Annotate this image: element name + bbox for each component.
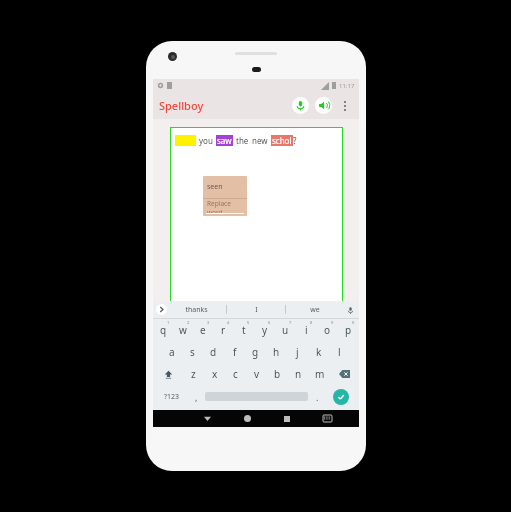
button[interactable]: 2 — [173, 319, 193, 341]
button[interactable]: 6 — [254, 319, 275, 341]
staticText: you — [199, 135, 213, 146]
staticText: u — [282, 323, 289, 337]
staticText: 6 — [268, 320, 271, 325]
button[interactable]: 0 — [338, 319, 359, 341]
staticText: a — [169, 345, 175, 359]
staticText: 7 — [289, 320, 292, 325]
staticText: y — [262, 323, 268, 337]
staticText: g — [252, 345, 259, 359]
button[interactable]: I — [227, 301, 285, 318]
button[interactable]: we — [286, 301, 344, 318]
button[interactable]: k — [308, 341, 329, 363]
button[interactable]: 1 — [153, 319, 173, 341]
button[interactable]: Switch keyboard — [307, 410, 347, 427]
button[interactable]: 9 — [317, 319, 338, 341]
staticText: s — [190, 345, 195, 359]
staticText: Spellboy — [159, 98, 204, 113]
button[interactable]: 4 — [213, 319, 233, 341]
button[interactable]: ?123 — [156, 385, 187, 408]
staticText: the — [236, 135, 249, 146]
staticText: , — [195, 391, 198, 403]
staticText: l — [338, 345, 341, 359]
staticText: n — [295, 367, 302, 381]
staticText: seen — [207, 182, 223, 192]
staticText: w — [179, 323, 187, 337]
staticText: c — [233, 367, 238, 381]
button[interactable]: 5 — [233, 319, 254, 341]
button[interactable]: 3 — [193, 319, 213, 341]
staticText: 4 — [227, 320, 230, 325]
staticText: j — [296, 345, 299, 359]
staticText: p — [345, 323, 352, 337]
staticText: x — [212, 367, 218, 381]
staticText: 9 — [331, 320, 334, 325]
button[interactable]: thanks — [167, 301, 226, 318]
button[interactable]: . — [308, 385, 326, 408]
button[interactable]: More suggestions — [156, 304, 167, 315]
button[interactable]: s — [182, 341, 203, 363]
staticText: o — [324, 323, 331, 337]
button[interactable]: n — [288, 363, 309, 385]
button[interactable]: seen — [203, 176, 247, 216]
button[interactable]: h — [266, 341, 287, 363]
staticText: f — [233, 345, 237, 359]
button[interactable]: Microphone — [292, 97, 309, 114]
staticText: new — [252, 135, 268, 146]
button[interactable]: d — [203, 341, 224, 363]
button[interactable]: Back — [188, 410, 227, 427]
button[interactable]: b — [267, 363, 288, 385]
button[interactable]: Shift — [153, 363, 183, 385]
staticText: saw — [217, 135, 232, 146]
staticText: thanks — [185, 305, 208, 315]
button[interactable]: v — [246, 363, 267, 385]
staticText: ?123 — [164, 392, 180, 402]
button[interactable]: 8 — [296, 319, 317, 341]
staticText: 11:17 — [339, 82, 355, 90]
button[interactable]: Voice input — [344, 304, 356, 316]
button[interactable]: x — [204, 363, 225, 385]
staticText: Replace word — [207, 199, 247, 213]
button[interactable]: m — [309, 363, 330, 385]
staticText: t — [242, 323, 246, 337]
button[interactable]: Enter — [333, 389, 349, 405]
staticText: 3 — [207, 320, 210, 325]
button[interactable]: Backspace — [330, 363, 359, 385]
staticText: e — [200, 323, 206, 337]
button[interactable]: z — [183, 363, 204, 385]
staticText: z — [191, 367, 196, 381]
button[interactable]: , — [187, 385, 205, 408]
staticText: q — [160, 323, 167, 337]
button[interactable]: Home — [227, 410, 267, 427]
staticText: b — [274, 367, 281, 381]
staticText: I — [255, 305, 258, 315]
staticText: 2 — [187, 320, 190, 325]
button[interactable]: f — [224, 341, 245, 363]
button[interactable]: 7 — [275, 319, 296, 341]
button[interactable]: Speak — [315, 97, 332, 114]
button[interactable]: a — [162, 341, 182, 363]
staticText: i — [305, 323, 308, 337]
staticText: m — [315, 367, 325, 381]
button[interactable]: l — [329, 341, 350, 363]
staticText: 5 — [247, 320, 250, 325]
staticText: we — [310, 305, 320, 315]
button[interactable]: j — [287, 341, 308, 363]
button[interactable]: More options — [337, 98, 353, 114]
button[interactable]: Recents — [267, 410, 307, 427]
staticText: r — [221, 323, 226, 337]
staticText: d — [210, 345, 217, 359]
staticText: h — [273, 345, 280, 359]
staticText: k — [316, 345, 322, 359]
button[interactable]: g — [245, 341, 266, 363]
staticText: schol — [272, 135, 292, 146]
staticText: 8 — [310, 320, 313, 325]
staticText: . — [316, 391, 319, 403]
staticText: ? — [293, 135, 297, 146]
button[interactable]: c — [225, 363, 246, 385]
